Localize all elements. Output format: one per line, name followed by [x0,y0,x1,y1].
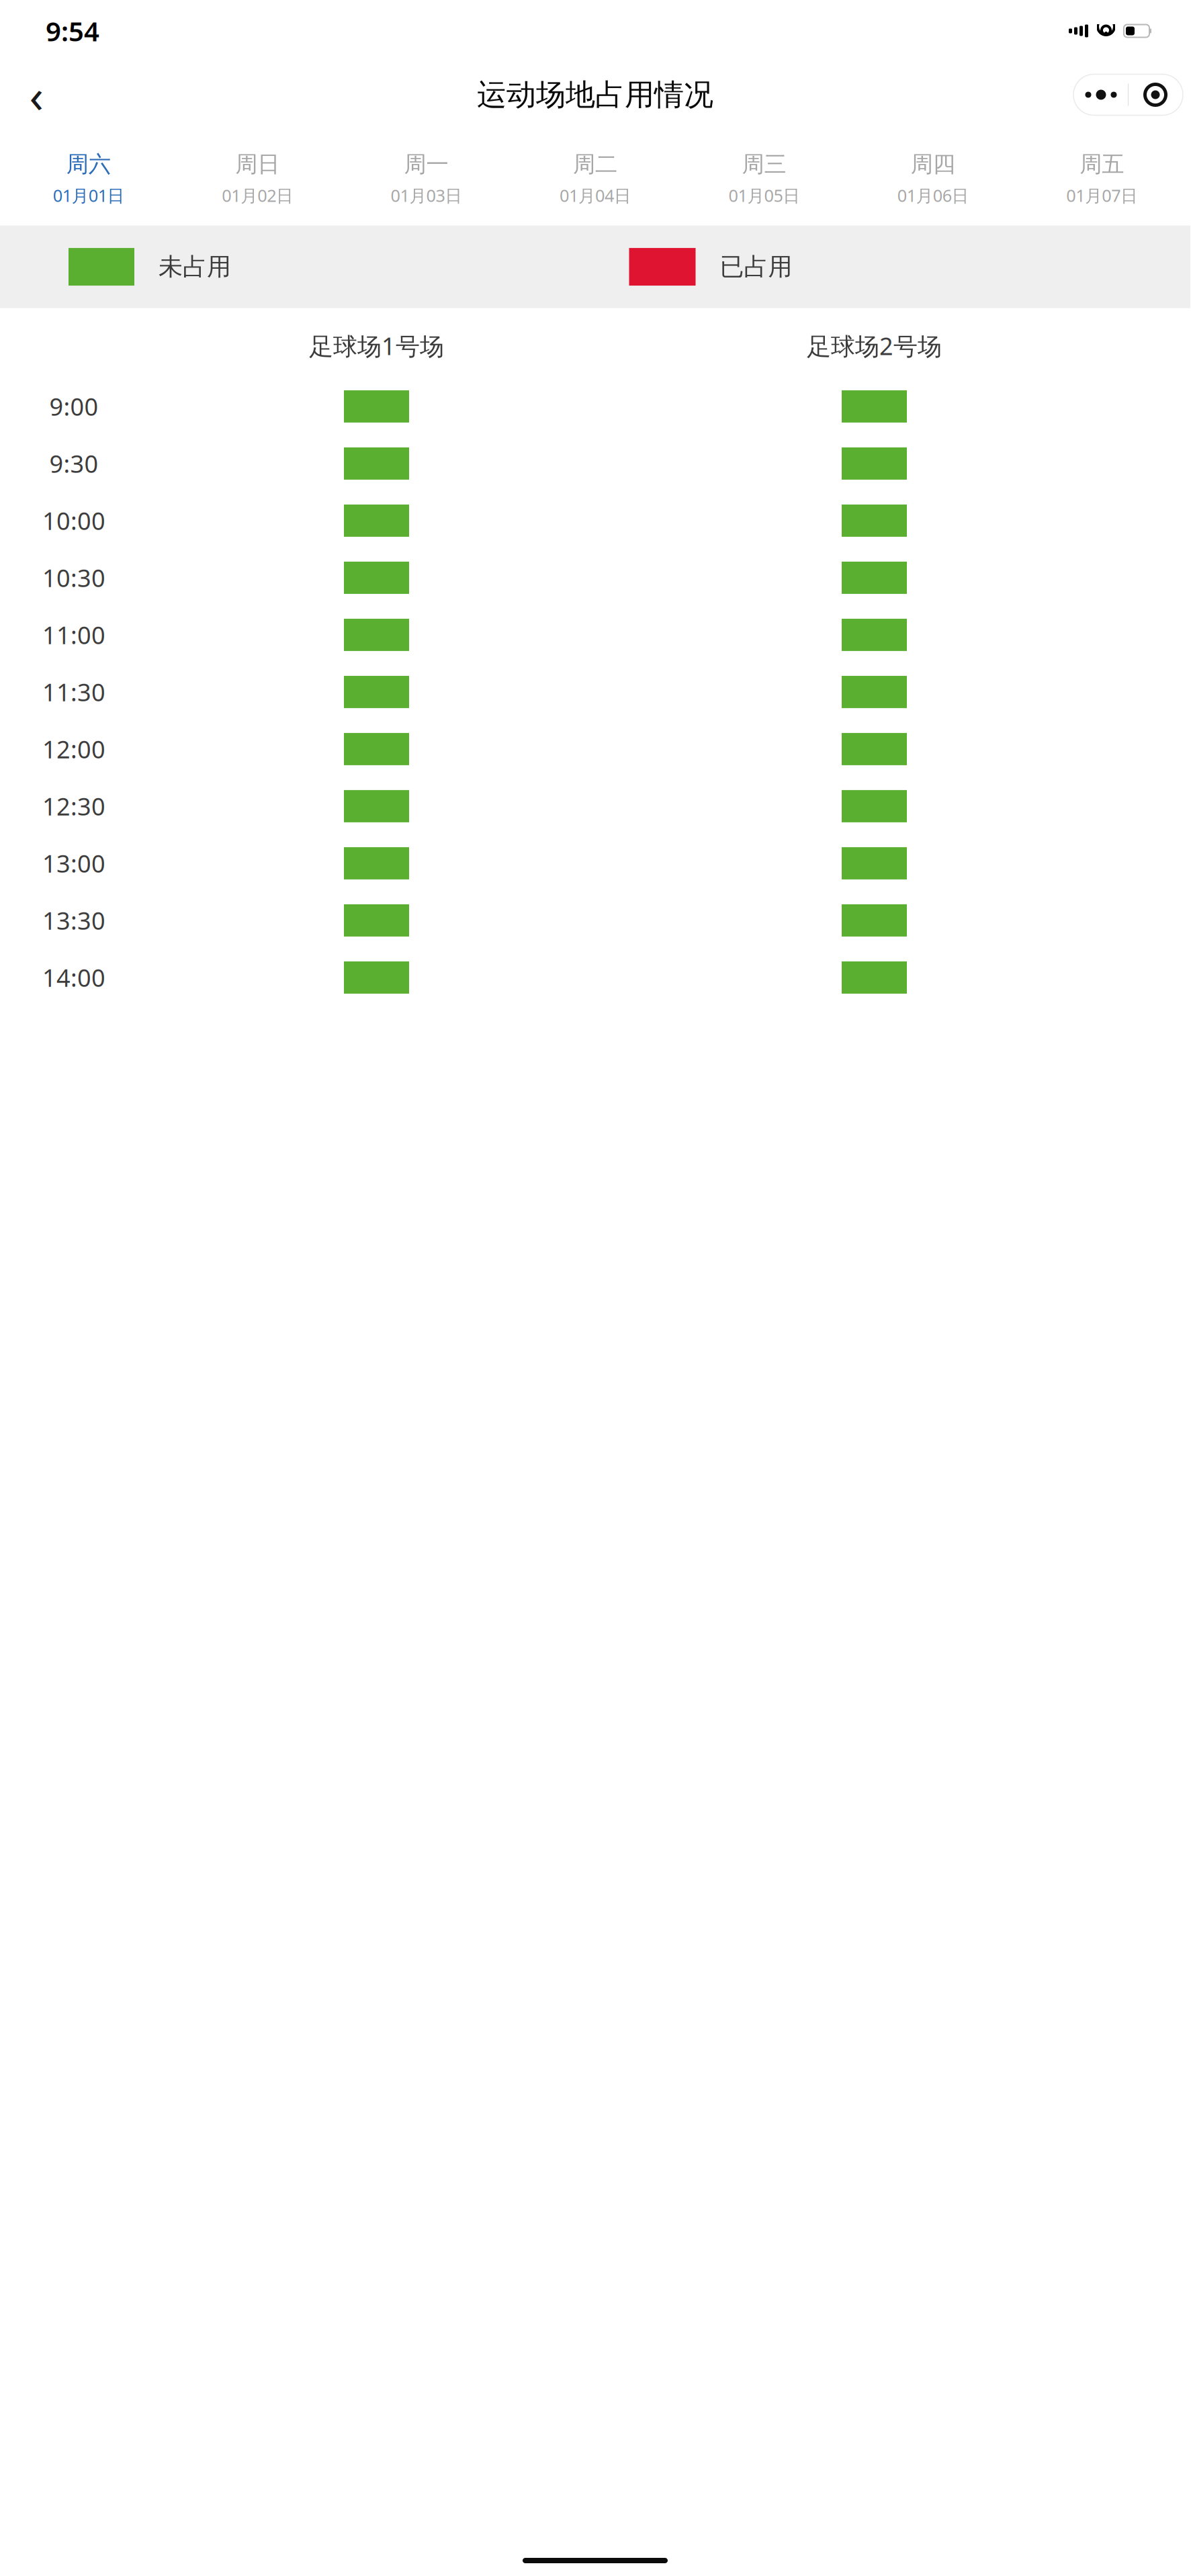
button[interactable]: 足球场2号场 9:00 未占用 [625,378,1123,435]
staticText: 01月01日 [53,184,124,207]
button[interactable]: 足球场1号场 9:00 未占用 [128,378,625,435]
staticText: 未占用 [159,252,231,282]
button[interactable]: 足球场2号场 13:00 未占用 [625,835,1123,892]
button[interactable]: 周六 [4,140,173,217]
staticText: 周日 [235,151,280,178]
staticText: 13:30 [42,904,105,936]
staticText: 已占用 [720,252,792,282]
button[interactable]: 足球场2号场 10:30 未占用 [625,550,1123,606]
button[interactable]: 足球场2号场 11:00 未占用 [625,607,1123,663]
button[interactable]: 足球场2号场 10:00 未占用 [625,492,1123,549]
button[interactable]: 返回 [15,73,58,116]
staticText: 周四 [911,151,955,178]
staticText: 14:00 [42,961,105,994]
staticText: 11:30 [42,676,105,708]
staticText: 01月02日 [222,184,293,207]
button[interactable]: 足球场1号场 13:00 未占用 [128,835,625,892]
staticText: 01月07日 [1066,184,1137,207]
staticText: 周一 [404,151,448,178]
button[interactable]: 足球场1号场 11:30 未占用 [128,664,625,720]
staticText: 01月03日 [391,184,462,207]
button[interactable]: 周二 [511,140,680,217]
staticText: 足球场1号场 [309,330,444,362]
staticText: ‹ [29,64,43,126]
button[interactable]: 周四 [848,140,1017,217]
button[interactable]: 周日 [173,140,342,217]
staticText: 12:00 [42,733,105,765]
button[interactable]: 足球场1号场 10:30 未占用 [128,550,625,606]
button[interactable]: 足球场1号场 12:00 未占用 [128,721,625,777]
staticText: 运动场地占用情况 [477,77,713,113]
button[interactable]: 周五 [1017,140,1186,217]
staticText: 10:30 [42,562,105,594]
staticText: 10:00 [42,505,105,537]
button[interactable]: 足球场2号场 14:00 未占用 [625,949,1123,1006]
staticText: 足球场2号场 [807,330,942,362]
staticText: 周三 [742,151,786,178]
staticText: 01月05日 [728,184,800,207]
button[interactable]: 足球场2号场 13:30 未占用 [625,892,1123,949]
button[interactable]: 周一 [342,140,511,217]
staticText: 周六 [66,151,111,178]
staticText: 12:30 [42,790,105,822]
button[interactable]: 周三 [680,140,848,217]
staticText: 周二 [573,151,617,178]
staticText: 01月04日 [560,184,631,207]
staticText: 9:00 [49,390,98,422]
staticText: 9:54 [46,13,99,49]
button[interactable]: 足球场1号场 14:00 未占用 [128,949,625,1006]
button[interactable]: 足球场1号场 13:30 未占用 [128,892,625,949]
button[interactable]: 足球场1号场 12:30 未占用 [128,778,625,834]
button[interactable]: 关闭 [1129,74,1182,115]
button[interactable]: 更多 [1074,74,1128,115]
staticText: 13:00 [42,847,105,879]
staticText: 周五 [1080,151,1124,178]
button[interactable]: 足球场2号场 12:00 未占用 [625,721,1123,777]
button[interactable]: 足球场1号场 9:30 未占用 [128,435,625,492]
staticText: 11:00 [42,619,105,651]
button[interactable]: 足球场2号场 11:30 未占用 [625,664,1123,720]
button[interactable]: 足球场1号场 11:00 未占用 [128,607,625,663]
staticText: 01月06日 [897,184,969,207]
button[interactable]: 足球场2号场 9:30 未占用 [625,435,1123,492]
button[interactable]: 足球场2号场 12:30 未占用 [625,778,1123,834]
staticText: 9:30 [49,447,98,480]
button[interactable]: 足球场1号场 10:00 未占用 [128,492,625,549]
